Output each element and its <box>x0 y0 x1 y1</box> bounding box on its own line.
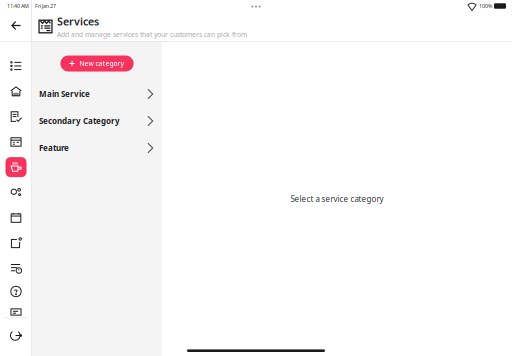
button[interactable]: Main Service <box>32 80 162 107</box>
button[interactable]: Schedule <box>0 205 32 230</box>
staticText: Services <box>57 14 99 28</box>
button[interactable]: New category <box>60 55 134 71</box>
button[interactable]: Promote <box>0 230 32 256</box>
staticText: 100% <box>479 2 492 10</box>
staticText: 11:40 AM <box>7 2 29 10</box>
staticText: Secondary Category <box>39 116 120 126</box>
button[interactable]: Calendar <box>0 129 32 154</box>
button[interactable]: Log out <box>0 325 32 346</box>
staticText: Select a service category <box>290 194 383 204</box>
button[interactable]: Services <box>0 154 32 180</box>
button[interactable]: Venue <box>0 79 32 104</box>
button[interactable]: Feature <box>32 134 162 161</box>
button[interactable]: Bookings <box>0 104 32 129</box>
staticText: New category <box>80 59 125 68</box>
button[interactable]: Help <box>0 282 32 300</box>
button[interactable]: Back <box>0 14 32 37</box>
staticText: Fri Jan 27 <box>35 2 56 10</box>
button[interactable]: Customers <box>0 180 32 205</box>
button[interactable]: Secondary Category <box>32 107 162 134</box>
button[interactable]: Messages <box>0 303 32 321</box>
button[interactable]: Reports <box>0 256 32 281</box>
button[interactable]: Overview <box>0 53 32 79</box>
staticText: Main Service <box>39 89 90 99</box>
staticText: Feature <box>39 143 69 153</box>
staticText: Add and manage services that your custom… <box>57 30 247 39</box>
